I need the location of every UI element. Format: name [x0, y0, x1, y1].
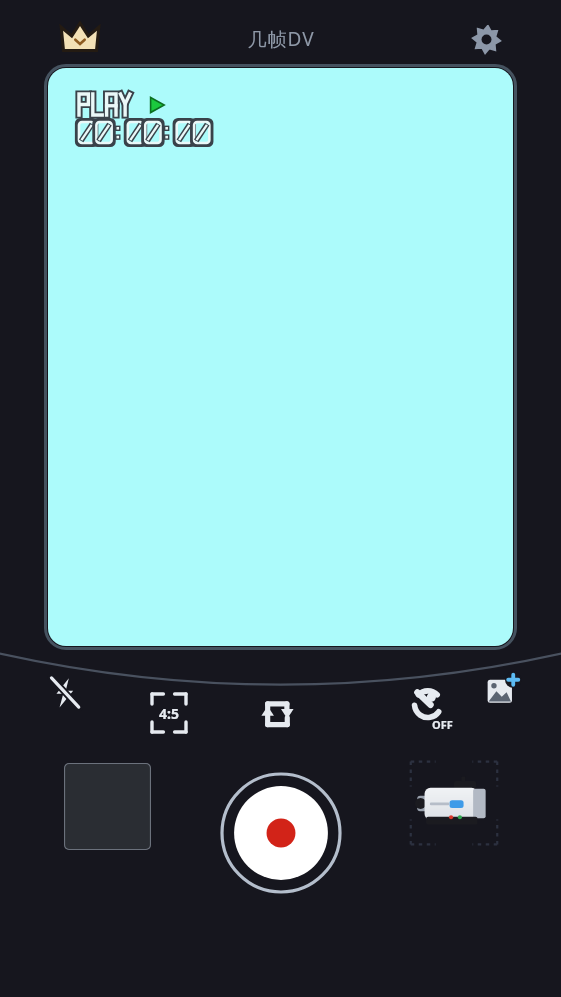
staticText: OFF — [432, 717, 453, 732]
button[interactable]: Settings — [463, 16, 509, 62]
button[interactable]: Record — [220, 772, 342, 894]
button[interactable]: Premium — [58, 17, 102, 61]
button[interactable]: Loop recording — [254, 688, 304, 738]
button[interactable]: Camera device — [408, 757, 500, 849]
button[interactable]: Aspect ratio 4 to 5 — [144, 688, 194, 738]
button[interactable]: Flash off — [38, 666, 90, 718]
button[interactable]: Last clip — [64, 763, 151, 850]
button[interactable]: Add photo — [477, 664, 529, 716]
staticText: 几帧DV — [247, 26, 315, 52]
staticText: 4:5 — [159, 704, 179, 723]
button[interactable]: Self timer off — [401, 684, 455, 738]
